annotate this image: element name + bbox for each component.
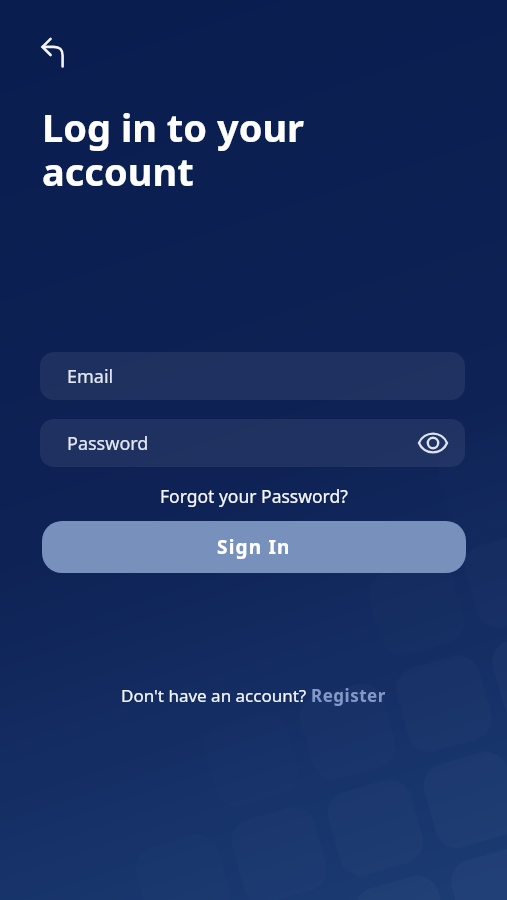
button[interactable]: Register (311, 684, 386, 707)
button[interactable]: Email (40, 352, 465, 400)
staticText: Don't have an account? (121, 684, 311, 707)
staticText: Password (67, 431, 149, 456)
staticText: Email (67, 364, 114, 389)
staticText: Forgot your Password? (160, 484, 348, 508)
button[interactable]: Sign In (42, 521, 466, 573)
button[interactable]: Forgot your Password? (160, 484, 348, 508)
staticText: Register (311, 684, 386, 707)
button[interactable]: Password (40, 419, 465, 467)
staticText: Sign In (217, 534, 291, 560)
staticText: Log in to your account (42, 101, 305, 197)
button[interactable] (409, 419, 457, 467)
button[interactable] (32, 28, 80, 76)
